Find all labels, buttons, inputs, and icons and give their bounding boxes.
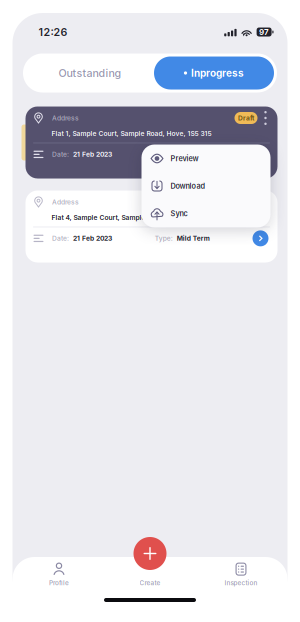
staticText: Type: — [155, 234, 173, 242]
staticText: Type: — [181, 150, 199, 158]
staticText: Flat 4, Sample Court, Sample Road, Hove,… — [51, 213, 212, 222]
staticText: Create — [139, 579, 160, 587]
staticText: Date: — [52, 150, 69, 158]
button[interactable]: Outstanding — [26, 56, 154, 89]
button[interactable]: Preview — [141, 145, 270, 172]
button[interactable]: More options — [257, 110, 273, 126]
staticText: 12:26 — [38, 25, 67, 38]
staticText: Mild Term — [177, 234, 210, 242]
button[interactable]: Sync — [141, 200, 270, 227]
staticText: Inspection — [224, 579, 257, 587]
staticText: 21 Feb 2023 — [73, 150, 112, 158]
staticText: Flat 1, Sample Court, Sample Road, Hove,… — [51, 129, 211, 138]
button[interactable]: Inspection — [206, 562, 276, 588]
button[interactable]: Inprogress — [154, 56, 274, 89]
button[interactable]: Download — [141, 172, 270, 200]
staticText: Address — [52, 198, 79, 206]
staticText: Profile — [49, 579, 69, 587]
staticText: 21 Feb 2023 — [73, 234, 112, 242]
staticText: Download — [170, 182, 205, 190]
staticText: Address — [52, 114, 79, 122]
staticText: Draft — [238, 114, 254, 122]
staticText: Date: — [52, 234, 69, 242]
staticText: Inprogress — [191, 67, 244, 79]
button[interactable]: Profile — [24, 562, 94, 588]
staticText: Outstanding — [58, 66, 121, 79]
button[interactable]: Open inspection — [252, 230, 268, 246]
staticText: 97 — [259, 27, 269, 37]
button[interactable]: Create — [115, 562, 185, 588]
staticText: Sync — [170, 209, 187, 218]
button[interactable]: Create — [133, 537, 166, 570]
staticText: Preview — [170, 154, 198, 163]
